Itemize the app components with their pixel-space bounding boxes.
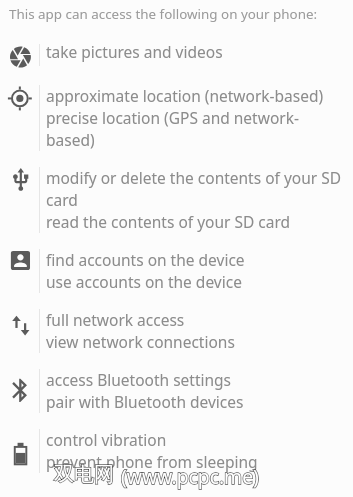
- staticText: control vibration prevent phone from sle…: [46, 429, 258, 472]
- staticText: This app can access the following on you…: [9, 5, 318, 23]
- staticText: approximate location (network-based) pre…: [46, 85, 324, 150]
- other: Storage: [0, 167, 39, 233]
- other: Bluetooth: [0, 369, 39, 413]
- other: Vibration: [0, 429, 39, 473]
- button[interactable]: Vibration: [0, 429, 353, 473]
- staticText: modify or delete the contents of your SD…: [46, 167, 342, 232]
- button[interactable]: Location: [0, 85, 353, 151]
- staticText: take pictures and videos: [46, 41, 223, 62]
- button[interactable]: Camera: [0, 41, 353, 63]
- staticText: find accounts on the device use accounts…: [46, 249, 245, 292]
- staticText: (www.pcpc.me): [121, 463, 259, 489]
- other: Network: [0, 309, 39, 353]
- button[interactable]: Network: [0, 309, 353, 353]
- button[interactable]: Bluetooth: [0, 369, 353, 413]
- staticText: access Bluetooth settings pair with Blue…: [46, 369, 244, 412]
- other: Accounts: [0, 249, 39, 293]
- staticText: 双电网: [54, 462, 114, 487]
- staticText: full network access view network connect…: [46, 309, 235, 352]
- button[interactable]: Storage: [0, 167, 353, 233]
- staticText: (www.pcpc.me): [121, 463, 259, 489]
- staticText: 双电网: [54, 462, 114, 487]
- other: Camera: [0, 41, 39, 63]
- button[interactable]: Accounts: [0, 249, 353, 293]
- other: Location: [0, 85, 39, 151]
